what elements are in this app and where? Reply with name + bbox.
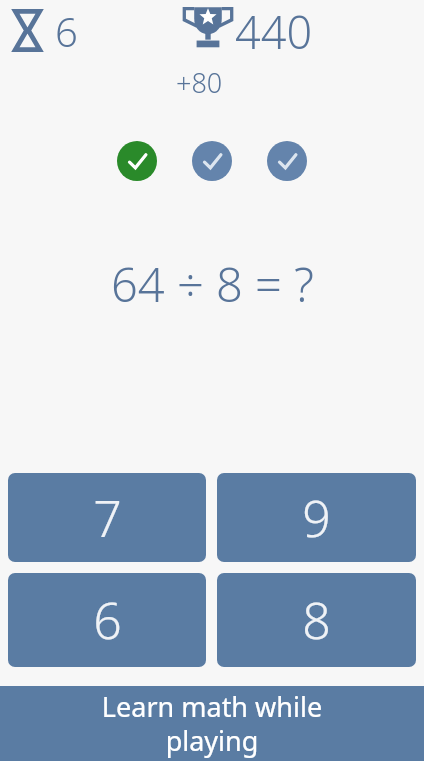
staticText: 440 xyxy=(235,1,313,62)
button[interactable]: 7 xyxy=(8,473,206,562)
staticText: Learn math while playing xyxy=(55,688,369,759)
staticText: 6 xyxy=(55,4,78,58)
button[interactable]: 8 xyxy=(217,573,416,667)
button[interactable]: Lives remaining xyxy=(11,9,44,52)
staticText: +80 xyxy=(176,64,223,101)
staticText: 9 xyxy=(302,484,331,552)
button[interactable]: Answered correctly xyxy=(117,141,157,181)
staticText: 64 ÷ 8 = ? xyxy=(111,252,314,316)
button[interactable]: Total score trophy xyxy=(178,5,238,50)
staticText: 7 xyxy=(93,484,122,552)
button[interactable]: Answered correctly xyxy=(267,141,307,181)
button[interactable]: 9 xyxy=(217,473,416,562)
button[interactable]: 6 xyxy=(8,573,206,667)
staticText: 8 xyxy=(302,586,331,654)
button[interactable]: Answered correctly xyxy=(192,141,232,181)
button[interactable]: Learn math while playing xyxy=(0,686,424,761)
staticText: 6 xyxy=(93,586,122,654)
